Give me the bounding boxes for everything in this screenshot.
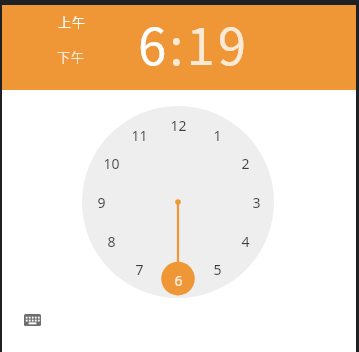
button[interactable]: 4 [232,230,258,252]
button[interactable]: 12 [165,114,191,136]
button[interactable]: 1 [204,124,230,146]
staticText: 上午 [58,12,87,31]
staticText: 8 [107,232,116,251]
button[interactable] [186,6,244,56]
button[interactable]: 5 [204,258,230,280]
staticText: 3 [252,193,261,212]
staticText: 2 [241,154,250,173]
staticText: 11 [131,126,148,145]
button[interactable]: 11 [126,124,152,146]
staticText: 7 [135,260,144,279]
staticText: 10 [103,154,120,173]
staticText: 4 [241,232,250,251]
button[interactable] [138,6,168,56]
button[interactable]: Switch to text input [19,309,46,331]
button[interactable]: 下午 [49,46,93,67]
staticText: 5 [213,260,222,279]
staticText: 9 [97,193,106,212]
button[interactable]: 8 [98,230,124,252]
staticText: 下午 [57,47,86,66]
staticText: 1 [213,126,222,145]
button[interactable]: 10 [98,152,124,174]
staticText: 6:19 [138,6,250,80]
button[interactable]: 2 [232,152,258,174]
staticText: 12 [170,116,187,135]
button[interactable]: 上午 [50,11,94,32]
button[interactable]: 7 [126,258,152,280]
button[interactable]: 3 [243,191,269,213]
button[interactable]: 9 [88,191,114,213]
staticText: 6 [174,271,183,290]
button[interactable]: 6 [165,269,191,291]
